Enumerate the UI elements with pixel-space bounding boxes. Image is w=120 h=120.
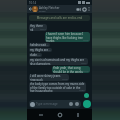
staticText: Yeah yeah, that song should be in the wo… [53,66,89,73]
staticText: 10:19 [62,78,68,81]
button[interactable]: Voice message [83,100,91,108]
button[interactable]: Messages and calls are end-to-end encryp… [29,15,90,21]
staticText: Hey there ok [30,24,46,31]
staticText: I still wore skinny jeans ringysuck [30,74,68,81]
staticText: dude [30,53,37,57]
staticText: online [39,10,46,13]
button[interactable]: More options [87,7,91,11]
button[interactable]: the body type comes from my mums side of… [29,82,86,92]
staticText: 10:16 [45,49,51,52]
staticText: Type a message [36,102,58,106]
button[interactable]: Hey there ok [29,24,47,31]
button[interactable]: my size is a hamstruck and my thighs are… [29,58,88,65]
button[interactable]: Yeah yeah, that song should be in the wo… [52,66,90,73]
button[interactable]: hahaha wait [29,43,50,47]
button[interactable]: Voice call [82,7,87,12]
staticText: Ashley Fletcher [39,6,60,10]
staticText: the body type comes from my mums side of… [30,82,85,92]
button[interactable]: Scroll to bottom [84,93,89,98]
button[interactable]: I haven't seen him because I have thighs… [45,32,90,42]
button[interactable]: Type a message [29,100,81,108]
button[interactable]: Video call [76,7,81,12]
staticText: my thighs are [30,48,48,52]
staticText: hahaha wait [30,43,47,47]
button[interactable]: I still wore skinny jeans ringysuck [29,74,69,81]
button[interactable]: my thighs are [29,48,52,52]
staticText: 10:16 [35,54,41,57]
staticText: 10:20 [79,89,85,92]
button[interactable]: Recents [74,111,82,119]
staticText: 10:17 [81,62,87,65]
staticText: 10:14 [40,28,46,31]
staticText: 10:18 [83,70,89,73]
button[interactable]: Contact avatar [32,6,38,12]
staticText: Messages and calls are end-to-end encryp… [31,16,88,20]
staticText: 10:14 [29,1,37,5]
staticText: 10:16 [43,44,49,47]
staticText: I haven't seen him because I have thighs… [46,32,89,42]
button[interactable]: dude [29,53,42,57]
staticText: 10:15 [83,39,89,42]
staticText: my size is a hamstruck and my thighs are… [30,58,87,65]
button[interactable]: Back [28,7,32,11]
button[interactable]: Back [37,111,45,119]
button[interactable]: Home [56,111,64,119]
